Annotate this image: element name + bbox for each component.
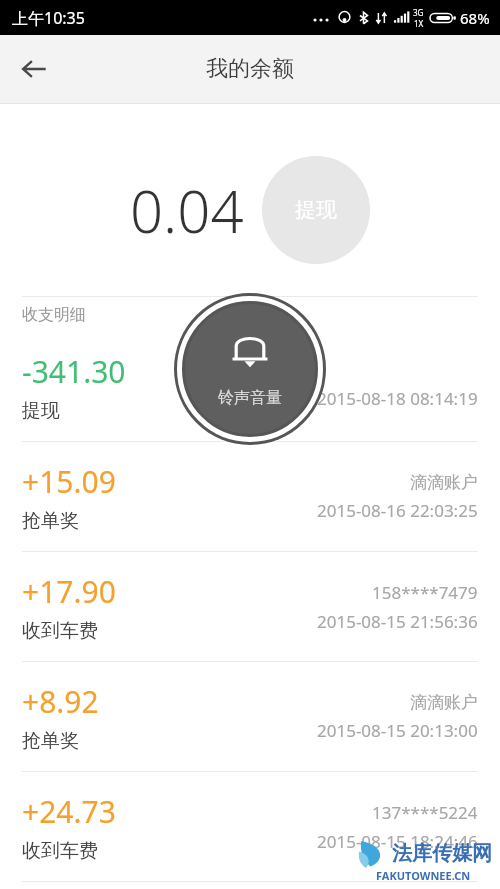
staticText: 2015-08-16 22:03:25 — [317, 499, 478, 522]
staticText: 收支明细 — [22, 305, 86, 325]
staticText: +15.09 — [22, 461, 116, 502]
staticText: 提现 — [295, 197, 337, 223]
staticText: 上午10:35 — [12, 7, 85, 29]
staticText: 铃声音量 — [218, 388, 282, 408]
staticText: +24.73 — [22, 791, 116, 832]
staticText: -341.30 — [22, 351, 126, 392]
staticText: 137****5224 — [372, 801, 478, 824]
staticText: 法库传媒网 — [392, 841, 492, 866]
button[interactable]: -341.30 — [0, 332, 500, 442]
staticText: 提现 — [22, 399, 60, 423]
staticText: 2015-08-15 20:13:00 — [317, 719, 478, 742]
button[interactable]: +17.90 — [0, 552, 500, 662]
staticText: +17.90 — [22, 571, 116, 612]
staticText: FAKUTOWNEE.CN — [376, 868, 471, 883]
staticText: 我的余额 — [206, 55, 294, 83]
staticText: 抢单奖 — [22, 509, 79, 533]
staticText: 1X — [414, 18, 424, 29]
button[interactable]: +15.09 — [0, 442, 500, 552]
staticText: 68% — [460, 8, 490, 28]
staticText: +8.92 — [22, 681, 99, 722]
staticText: 抢单奖 — [22, 729, 79, 753]
staticText: 滴滴账户 — [410, 692, 478, 713]
staticText: 收到车费 — [22, 839, 98, 863]
button[interactable]: +24.73 — [0, 772, 500, 882]
staticText: 2015-08-15 21:56:36 — [317, 610, 478, 633]
staticText: 2015-08-15 18:24:46 — [317, 830, 478, 853]
staticText: 2015-08-18 08:14:19 — [317, 387, 478, 410]
staticText: 收到车费 — [22, 619, 98, 643]
button[interactable]: Back — [8, 43, 60, 95]
staticText: 0.04 — [130, 171, 244, 250]
button[interactable]: +8.92 — [0, 662, 500, 772]
staticText: 滴滴账户 — [410, 472, 478, 493]
staticText: 3G — [413, 7, 424, 18]
staticText: 158****7479 — [372, 581, 478, 604]
button[interactable]: 提现 — [262, 156, 370, 264]
